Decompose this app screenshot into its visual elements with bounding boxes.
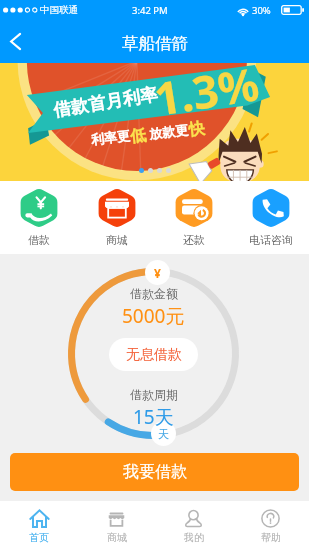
button[interactable]: 帮助 [232, 508, 309, 544]
staticText: 利率更 [90, 127, 131, 147]
staticText: 1.3% [150, 63, 263, 129]
staticText: 商城 [107, 531, 127, 544]
staticText: 商城 [106, 233, 128, 247]
staticText: 中国联通 [40, 4, 78, 16]
staticText: 帮助 [261, 531, 281, 544]
button[interactable]: Loan amount slider [145, 260, 170, 285]
button[interactable]: 商城 [78, 188, 155, 247]
button[interactable]: 电话咨询 [232, 188, 309, 247]
button[interactable]: Back [0, 20, 32, 63]
staticText: 快 [188, 119, 206, 140]
staticText: ¥ [154, 265, 161, 281]
staticText: 我的 [184, 531, 204, 544]
button[interactable]: 还款 [155, 188, 232, 247]
staticText: 还款 [183, 233, 205, 247]
button[interactable]: 我的 [155, 508, 232, 544]
staticText: 借款 [28, 233, 50, 247]
staticText: 放款更 [145, 120, 190, 143]
button[interactable]: 首页 [0, 508, 78, 544]
button[interactable]: 借款 [0, 188, 78, 247]
staticText: 借款周期 [130, 387, 178, 402]
staticText: 3:42 PM [132, 4, 168, 17]
staticText: 借款金额 [130, 286, 178, 301]
button[interactable]: 我要借款 [10, 453, 299, 491]
button[interactable]: 无息借款 [109, 338, 198, 371]
staticText: 低 [129, 125, 147, 147]
button[interactable]: Loan period slider [151, 421, 176, 446]
staticText: 天 [158, 427, 169, 441]
button[interactable]: 商城 [78, 508, 155, 544]
staticText: 无息借款 [126, 346, 182, 364]
staticText: 15天 [133, 404, 174, 430]
staticText: 首页 [29, 531, 49, 544]
staticText: 草船借箭 [122, 33, 188, 54]
staticText: 30% [252, 4, 271, 17]
staticText: 我要借款 [123, 462, 187, 482]
staticText: 借款首月利率 [52, 83, 159, 121]
staticText: 5000元 [122, 303, 185, 329]
staticText: 电话咨询 [249, 233, 293, 247]
